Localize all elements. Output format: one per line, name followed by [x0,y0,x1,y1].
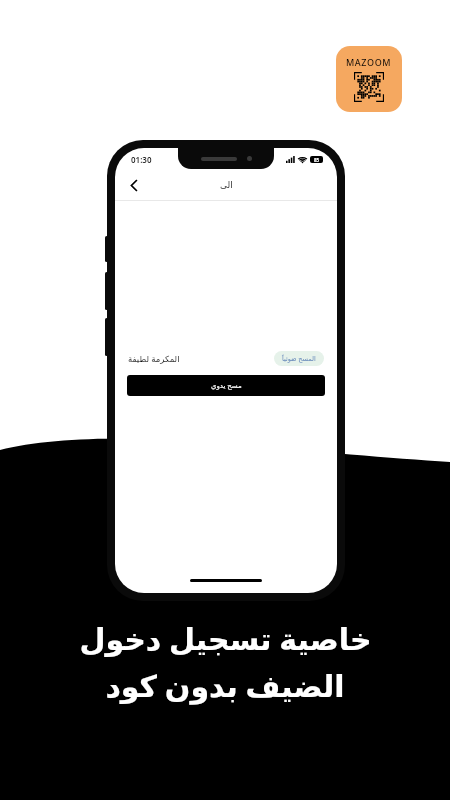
staticText: MAZOOM [346,56,392,68]
button[interactable]: مسح يدوي [127,375,325,396]
staticText: خاصية تسجيل دخول [79,618,372,659]
staticText: مسح يدوي [211,381,242,391]
staticText: الى [220,180,233,190]
staticText: المكرمة لطيفة [128,353,180,365]
button[interactable]: Mazoom app icon [336,46,402,112]
staticText: الضيف بدون كود [105,665,345,706]
staticText: 85 [314,157,320,163]
button[interactable]: المسح ضوئياً [274,351,324,366]
staticText: المسح ضوئياً [282,354,316,363]
button[interactable]: Back [121,172,147,198]
staticText: 01:30 [131,154,152,165]
